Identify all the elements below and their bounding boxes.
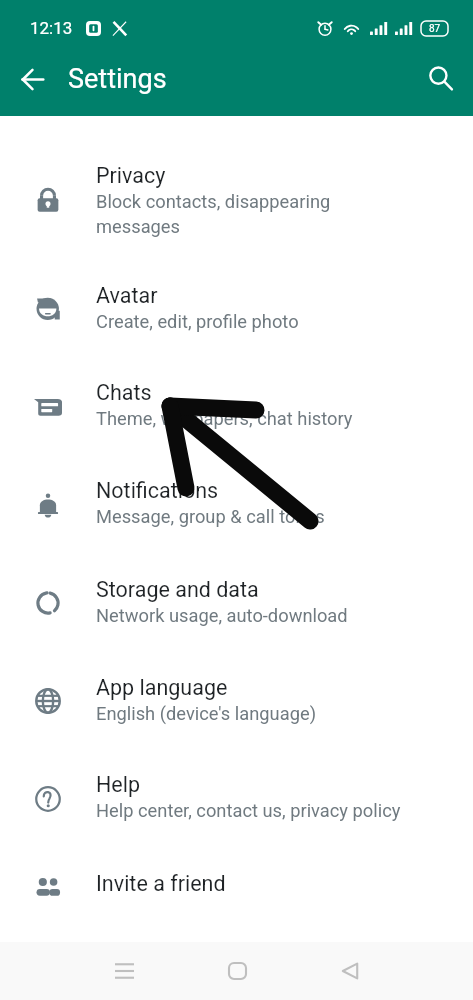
button[interactable]: Avatar <box>0 280 473 377</box>
staticText: Help <box>96 772 141 797</box>
staticText: 87 <box>429 23 441 35</box>
staticText: 12:13 <box>30 18 73 38</box>
button[interactable]: Search <box>417 55 465 103</box>
staticText: Network usage, auto-download <box>96 605 348 626</box>
staticText: Block contacts, disappearing messages <box>96 191 331 237</box>
staticText: Chats <box>96 380 152 405</box>
button[interactable]: Recent apps <box>96 943 152 999</box>
button[interactable]: Storage and data <box>0 574 473 672</box>
staticText: Help center, contact us, privacy policy <box>96 800 401 821</box>
staticText: Invite a friend <box>96 871 226 896</box>
staticText: Message, group & call tones <box>96 506 325 527</box>
button[interactable]: Help <box>0 769 473 868</box>
staticText: Theme, wallpapers, chat history <box>96 408 353 429</box>
staticText: Avatar <box>96 283 158 308</box>
staticText: Notifications <box>96 478 219 503</box>
button[interactable]: Chats <box>0 377 473 475</box>
button[interactable]: Home <box>209 943 265 999</box>
button[interactable]: Back <box>321 943 377 999</box>
button[interactable]: App language <box>0 672 473 769</box>
button[interactable]: Privacy <box>0 160 473 280</box>
staticText: Privacy <box>96 163 166 188</box>
button[interactable]: Notifications <box>0 475 473 574</box>
staticText: Storage and data <box>96 577 259 602</box>
staticText: English (device's language) <box>96 703 317 724</box>
button[interactable]: Invite a friend <box>0 868 473 932</box>
staticText: Create, edit, profile photo <box>96 311 299 332</box>
button[interactable]: Back <box>8 55 56 103</box>
staticText: Settings <box>68 63 167 95</box>
staticText: App language <box>96 675 228 700</box>
